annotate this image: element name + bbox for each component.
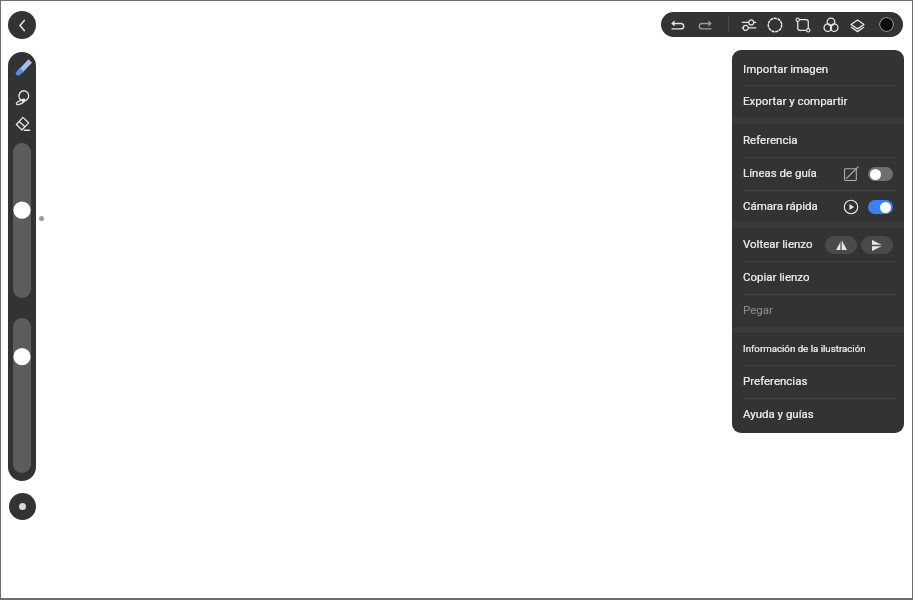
button[interactable]: Switch off xyxy=(868,167,893,181)
button[interactable]: Switch on xyxy=(868,200,893,214)
button[interactable]: Pegar xyxy=(732,294,904,327)
button[interactable]: Crop xyxy=(792,14,814,36)
staticText: Líneas de guía xyxy=(743,166,817,179)
button[interactable]: Preferencias xyxy=(732,365,904,398)
button[interactable]: Voltear lienzo xyxy=(732,228,904,261)
staticText: Importar imagen xyxy=(743,62,829,75)
button[interactable]: Información de la ilustración xyxy=(732,333,904,366)
button[interactable]: Flip vertically xyxy=(825,236,857,254)
button[interactable]: Líneas de guía xyxy=(732,157,904,190)
button[interactable]: Cámara rápida xyxy=(732,190,904,223)
button[interactable]: Copiar lienzo xyxy=(732,261,904,294)
staticText: Preferencias xyxy=(743,374,808,387)
button[interactable]: Colour mixer xyxy=(820,14,842,36)
button[interactable]: Adjustments xyxy=(738,14,760,36)
button[interactable]: Colour xyxy=(9,493,36,520)
button[interactable]: Flip horizontally xyxy=(861,236,893,254)
button[interactable]: Back xyxy=(8,11,36,39)
button[interactable]: Current colour xyxy=(879,17,894,32)
staticText: Voltear lienzo xyxy=(743,237,813,250)
button[interactable]: Selection xyxy=(764,14,786,36)
button[interactable]: Importar imagen xyxy=(732,53,904,86)
button[interactable]: Referencia xyxy=(732,124,904,157)
button[interactable]: Ayuda y guías xyxy=(732,398,904,431)
staticText: Referencia xyxy=(743,133,798,146)
button[interactable]: Layers xyxy=(846,14,868,36)
button[interactable]: Eraser xyxy=(10,111,34,135)
staticText: Pegar xyxy=(743,303,773,316)
staticText: Exportar y compartir xyxy=(743,94,848,107)
staticText: Cámara rápida xyxy=(743,199,818,212)
button[interactable]: Lasso xyxy=(10,84,34,108)
button[interactable]: Undo xyxy=(666,14,688,36)
button[interactable]: Exportar y compartir xyxy=(732,85,904,118)
button[interactable]: Redo xyxy=(694,14,716,36)
button[interactable]: Brush xyxy=(10,56,34,80)
staticText: Información de la ilustración xyxy=(743,343,866,354)
staticText: Copiar lienzo xyxy=(743,270,810,283)
staticText: Ayuda y guías xyxy=(743,407,814,420)
